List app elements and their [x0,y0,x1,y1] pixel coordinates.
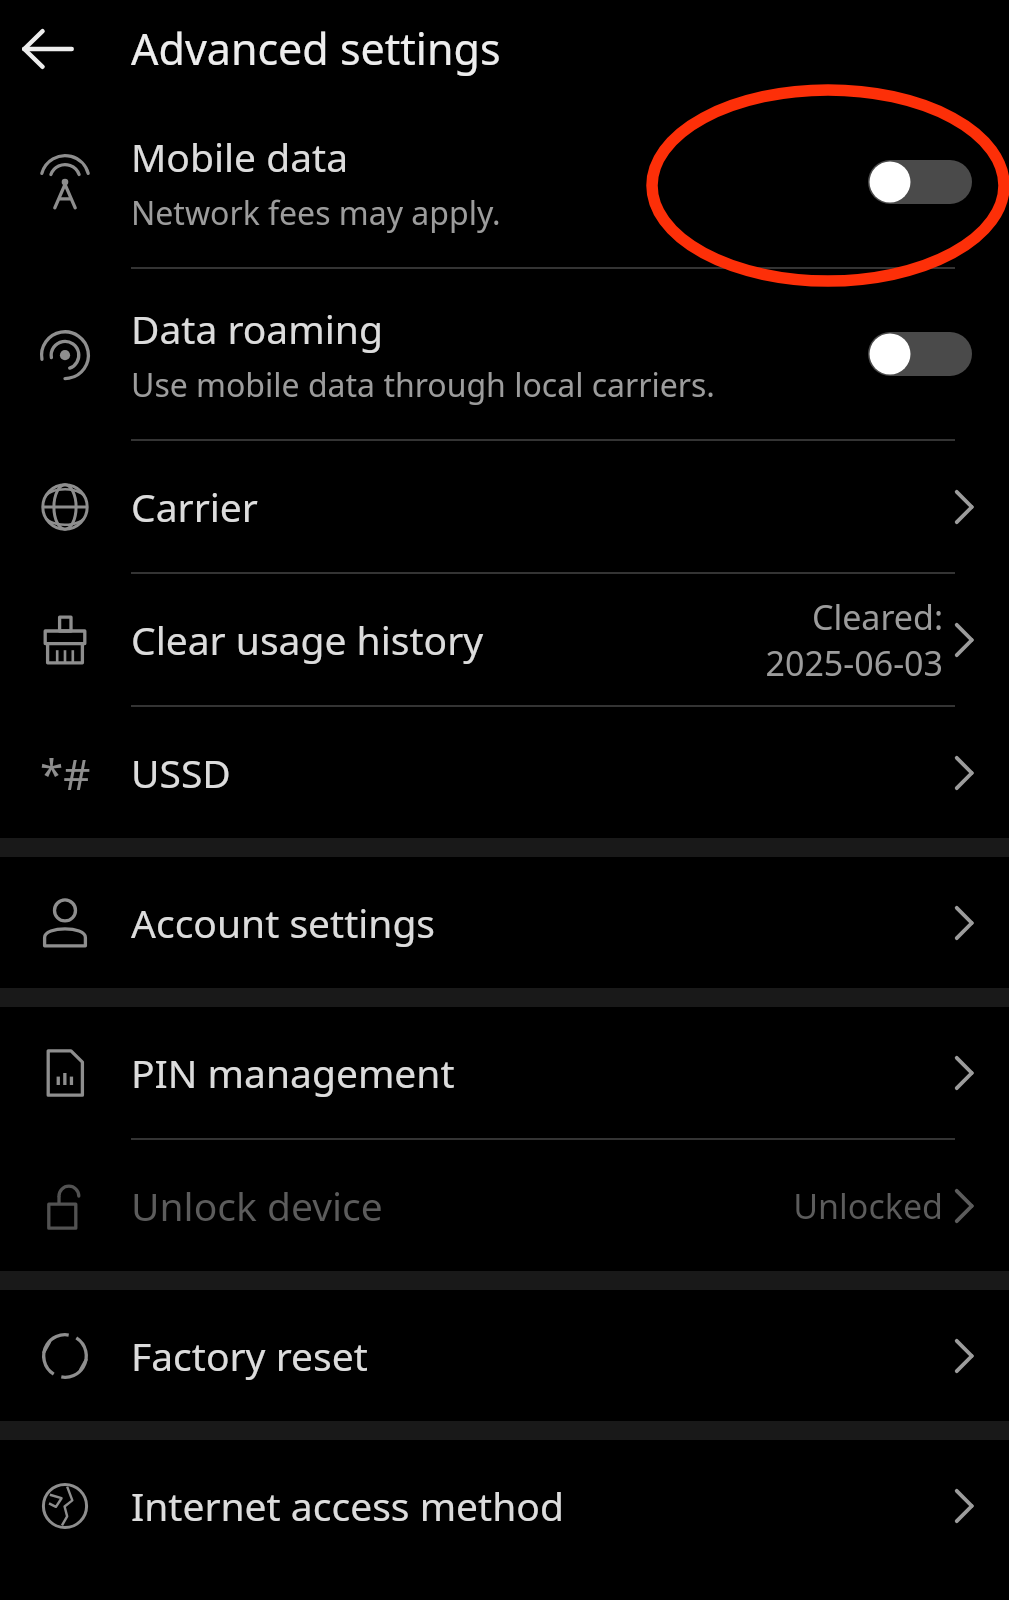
staticText: Account settings [131,896,436,949]
button[interactable]: Mobile data switch [868,160,972,204]
staticText: USSD [131,746,231,799]
button[interactable]: Data roaming [0,269,1009,439]
staticText: PIN management [131,1046,455,1099]
staticText: Cleared: [811,594,943,640]
staticText: Mobile data [131,130,349,183]
button[interactable]: Back [0,1,96,97]
button[interactable]: Factory reset [0,1290,1009,1421]
staticText: Use mobile data through local carriers. [131,363,715,407]
staticText: Data roaming [131,302,383,355]
staticText: Carrier [131,480,258,533]
staticText: Unlocked [793,1183,943,1229]
button[interactable]: Carrier [0,441,1009,572]
button[interactable]: Internet access method [0,1440,1009,1571]
button[interactable]: PIN management [0,1007,1009,1138]
staticText: Advanced settings [131,19,501,78]
staticText: 2025-06-03 [765,640,943,686]
button[interactable]: Data roaming switch [868,332,972,376]
staticText: Factory reset [131,1329,368,1382]
button[interactable]: Mobile data [0,97,1009,267]
staticText: Network fees may apply. [131,191,501,235]
staticText: *# [40,745,91,802]
button[interactable]: Unlock device [0,1140,1009,1271]
button[interactable]: Clear usage history [0,574,1009,705]
staticText: Unlock device [131,1179,383,1232]
staticText: Internet access method [131,1479,564,1532]
button[interactable]: *# [0,707,1009,838]
button[interactable]: Account settings [0,857,1009,988]
staticText: Clear usage history [131,613,484,666]
